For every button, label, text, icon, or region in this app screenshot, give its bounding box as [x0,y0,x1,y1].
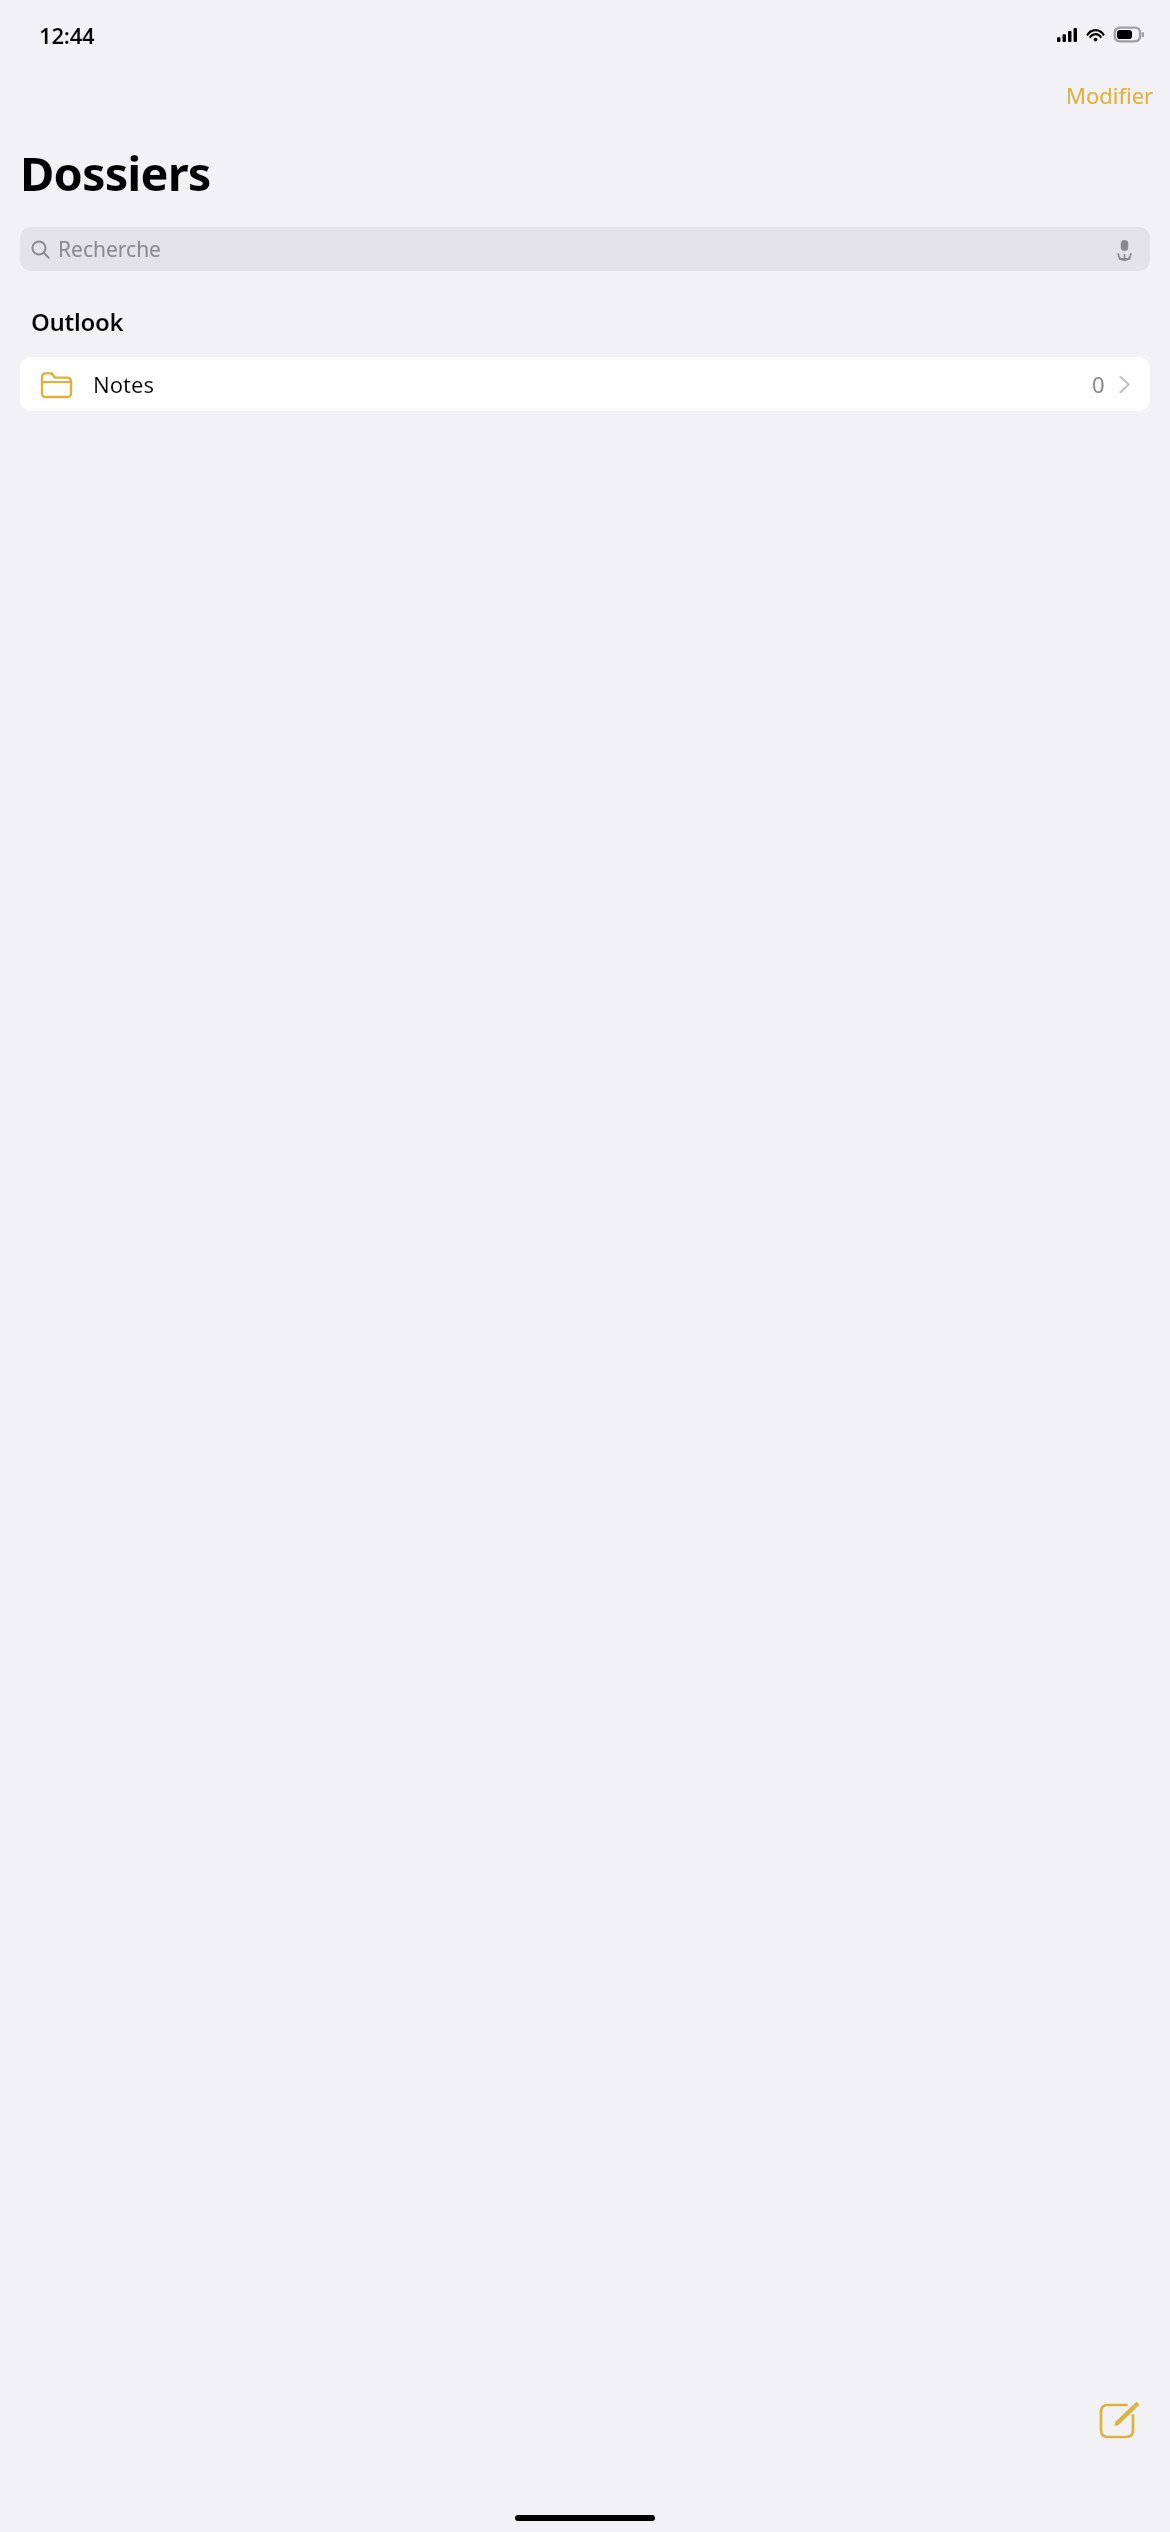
button[interactable]: Notes [20,357,1150,411]
staticText: Dossiers [20,141,211,205]
staticText: Outlook [31,305,124,338]
button[interactable]: Dictée [1109,234,1139,264]
staticText: Recherche [58,235,161,264]
staticText: Notes [93,369,154,399]
staticText: 12:44 [39,20,95,50]
button[interactable]: Nouvelle note [1094,2394,1148,2448]
button[interactable]: Recherche [20,227,1150,271]
staticText: Modifier [1066,80,1154,110]
staticText: 0 [1092,369,1105,399]
button[interactable]: Modifier [1060,76,1160,114]
